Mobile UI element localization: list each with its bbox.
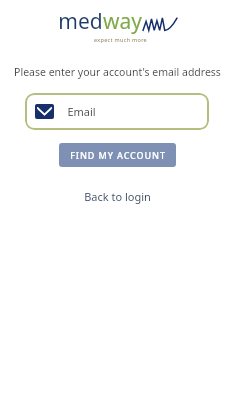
staticText: med [58,7,103,36]
other: Email [35,104,54,119]
button[interactable]: Back to login [76,186,159,207]
button[interactable]: Email [25,93,209,130]
button[interactable]: FIND MY ACCOUNT [59,143,176,167]
staticText: way [103,7,142,36]
staticText: Email [67,104,96,119]
staticText: expect much more [94,36,147,43]
staticText: FIND MY ACCOUNT [70,149,166,161]
staticText: Back to login [84,189,151,204]
staticText: Please enter your account's email addres… [14,65,221,79]
